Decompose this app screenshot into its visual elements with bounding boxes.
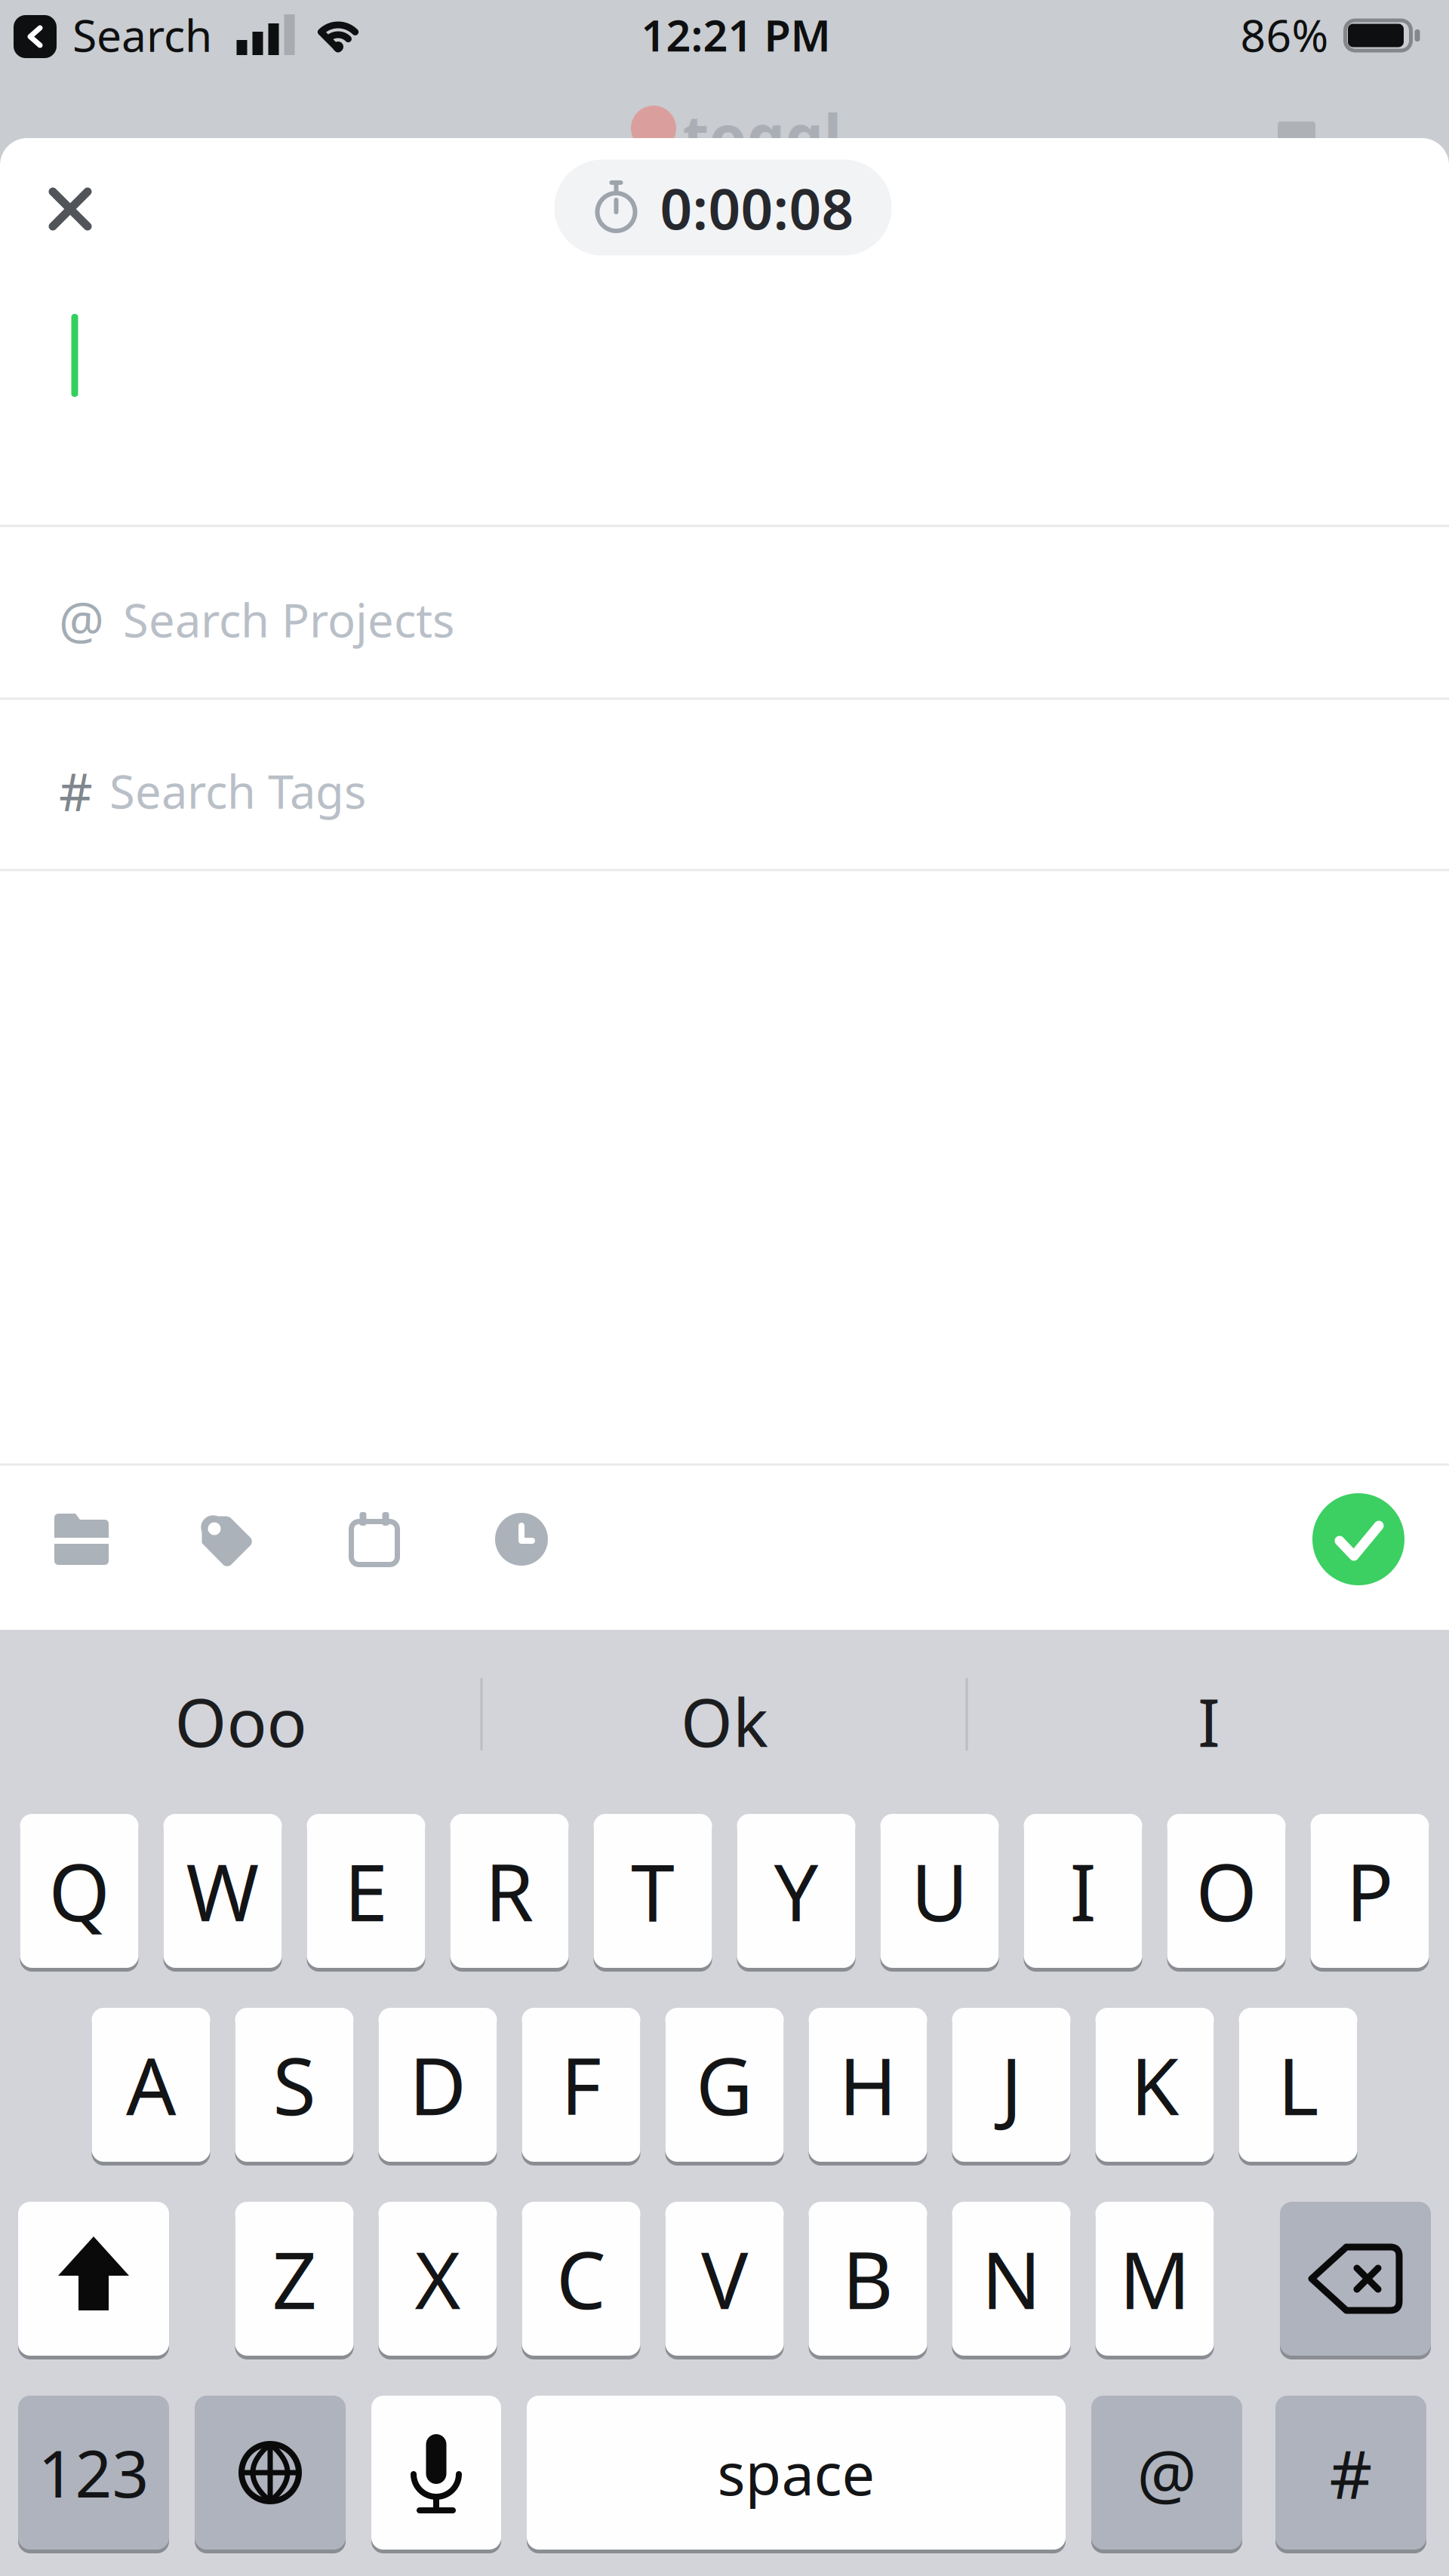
staticText: Search Tags xyxy=(109,760,366,821)
button[interactable]: @ xyxy=(1091,2396,1242,2550)
button[interactable]: K xyxy=(1095,2008,1214,2162)
button[interactable]: Shift xyxy=(18,2202,169,2356)
staticText: X xyxy=(415,2227,461,2331)
button[interactable]: J xyxy=(952,2008,1071,2162)
staticText: L xyxy=(1278,2033,1318,2137)
button[interactable]: I xyxy=(1024,1814,1142,1968)
staticText: @ xyxy=(59,586,104,653)
staticText: O xyxy=(1196,1839,1257,1943)
button[interactable]: V xyxy=(665,2202,784,2356)
button[interactable]: O xyxy=(1167,1814,1286,1968)
button[interactable]: H xyxy=(809,2008,927,2162)
button[interactable]: Date xyxy=(344,1509,405,1569)
button[interactable]: F xyxy=(522,2008,640,2162)
staticText: M xyxy=(1119,2227,1190,2331)
staticText: toggl xyxy=(683,96,842,176)
button[interactable]: Timer running xyxy=(554,160,892,255)
staticText: K xyxy=(1131,2033,1179,2137)
button[interactable]: Y xyxy=(737,1814,855,1968)
button[interactable]: X xyxy=(378,2202,497,2356)
staticText: @ xyxy=(1137,2429,1197,2517)
button[interactable]: E xyxy=(307,1814,425,1968)
button[interactable]: Search Projects xyxy=(0,534,1449,705)
button[interactable]: Next keyboard xyxy=(195,2396,346,2550)
staticText: Search xyxy=(72,5,212,64)
staticText: Ooo xyxy=(175,1677,307,1765)
staticText: # xyxy=(1329,2429,1372,2517)
staticText: F xyxy=(561,2033,601,2137)
staticText: 86% xyxy=(1240,5,1329,64)
button[interactable]: I xyxy=(998,1638,1420,1804)
staticText: G xyxy=(696,2033,753,2137)
button[interactable]: Search Tags xyxy=(0,705,1449,876)
button[interactable]: L xyxy=(1239,2008,1357,2162)
button[interactable]: 123 xyxy=(18,2396,169,2550)
button[interactable]: Save entry xyxy=(1312,1493,1404,1585)
staticText: # xyxy=(59,756,93,826)
staticText: N xyxy=(981,2227,1041,2331)
button[interactable]: P xyxy=(1311,1814,1429,1968)
button[interactable]: Duration xyxy=(491,1509,552,1569)
staticText: 123 xyxy=(38,2430,149,2515)
staticText: I xyxy=(1070,1839,1096,1943)
staticText: space xyxy=(717,2434,875,2511)
button[interactable]: G xyxy=(665,2008,784,2162)
staticText: Z xyxy=(272,2227,317,2331)
staticText: C xyxy=(556,2227,606,2331)
button[interactable]: Ok xyxy=(513,1638,936,1804)
button[interactable]: A xyxy=(92,2008,210,2162)
staticText: J xyxy=(1001,2033,1022,2137)
button[interactable]: R xyxy=(450,1814,569,1968)
button[interactable]: N xyxy=(952,2202,1071,2356)
button[interactable]: U xyxy=(880,1814,999,1968)
button[interactable]: S xyxy=(235,2008,354,2162)
button[interactable]: Dictate xyxy=(371,2396,501,2550)
button[interactable]: Tags xyxy=(195,1510,257,1572)
staticText: H xyxy=(839,2033,897,2137)
staticText: Y xyxy=(774,1839,818,1943)
button[interactable]: Z xyxy=(235,2202,354,2356)
staticText: P xyxy=(1346,1839,1394,1943)
button[interactable]: W xyxy=(163,1814,282,1968)
staticText: A xyxy=(126,2033,176,2137)
button[interactable]: Project xyxy=(51,1511,112,1568)
staticText: 12:21 PM xyxy=(641,6,831,63)
button[interactable]: space xyxy=(527,2396,1066,2550)
staticText: U xyxy=(911,1839,968,1943)
button[interactable]: B xyxy=(809,2202,927,2356)
staticText: D xyxy=(409,2033,466,2137)
staticText: I xyxy=(1198,1677,1220,1765)
staticText: T xyxy=(631,1839,675,1943)
button[interactable]: Close xyxy=(36,175,104,243)
button[interactable]: D xyxy=(378,2008,497,2162)
button[interactable]: # xyxy=(1275,2396,1426,2550)
button[interactable]: Q xyxy=(20,1814,138,1968)
staticText: R xyxy=(485,1839,534,1943)
button[interactable]: Delete xyxy=(1280,2202,1431,2356)
staticText: Q xyxy=(49,1839,110,1943)
staticText: 0:00:08 xyxy=(660,170,854,245)
button[interactable]: M xyxy=(1095,2202,1214,2356)
staticText: S xyxy=(273,2033,316,2137)
staticText: Search Projects xyxy=(123,589,454,650)
button[interactable]: T xyxy=(594,1814,712,1968)
staticText: E xyxy=(344,1839,388,1943)
button[interactable]: Back to Search xyxy=(14,15,57,58)
button[interactable]: C xyxy=(522,2202,640,2356)
staticText: V xyxy=(701,2227,748,2331)
staticText: B xyxy=(842,2227,894,2331)
button[interactable]: Ooo xyxy=(29,1638,452,1804)
staticText: W xyxy=(186,1839,259,1943)
staticText: Ok xyxy=(681,1677,768,1765)
